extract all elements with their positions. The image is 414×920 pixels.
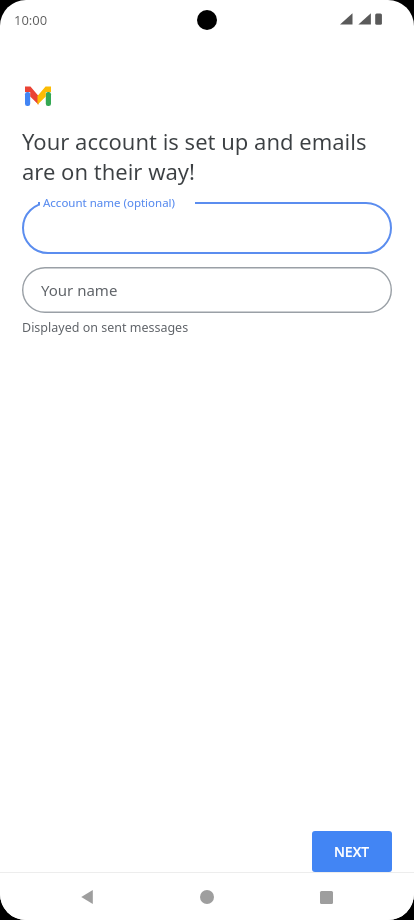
- staticText: 10:00: [14, 11, 48, 29]
- button[interactable]: Your name: [22, 267, 392, 313]
- staticText: Your account is set up and emails are on…: [22, 126, 367, 186]
- button[interactable]: Account name (optional): [22, 202, 392, 254]
- staticText: Your name: [41, 280, 118, 300]
- button[interactable]: Back: [66, 875, 110, 919]
- button[interactable]: Recent apps: [304, 875, 348, 919]
- button[interactable]: NEXT: [312, 831, 392, 872]
- staticText: Account name (optional): [43, 195, 176, 211]
- staticText: Displayed on sent messages: [22, 319, 189, 336]
- staticText: NEXT: [334, 842, 370, 861]
- button[interactable]: Home: [185, 875, 229, 919]
